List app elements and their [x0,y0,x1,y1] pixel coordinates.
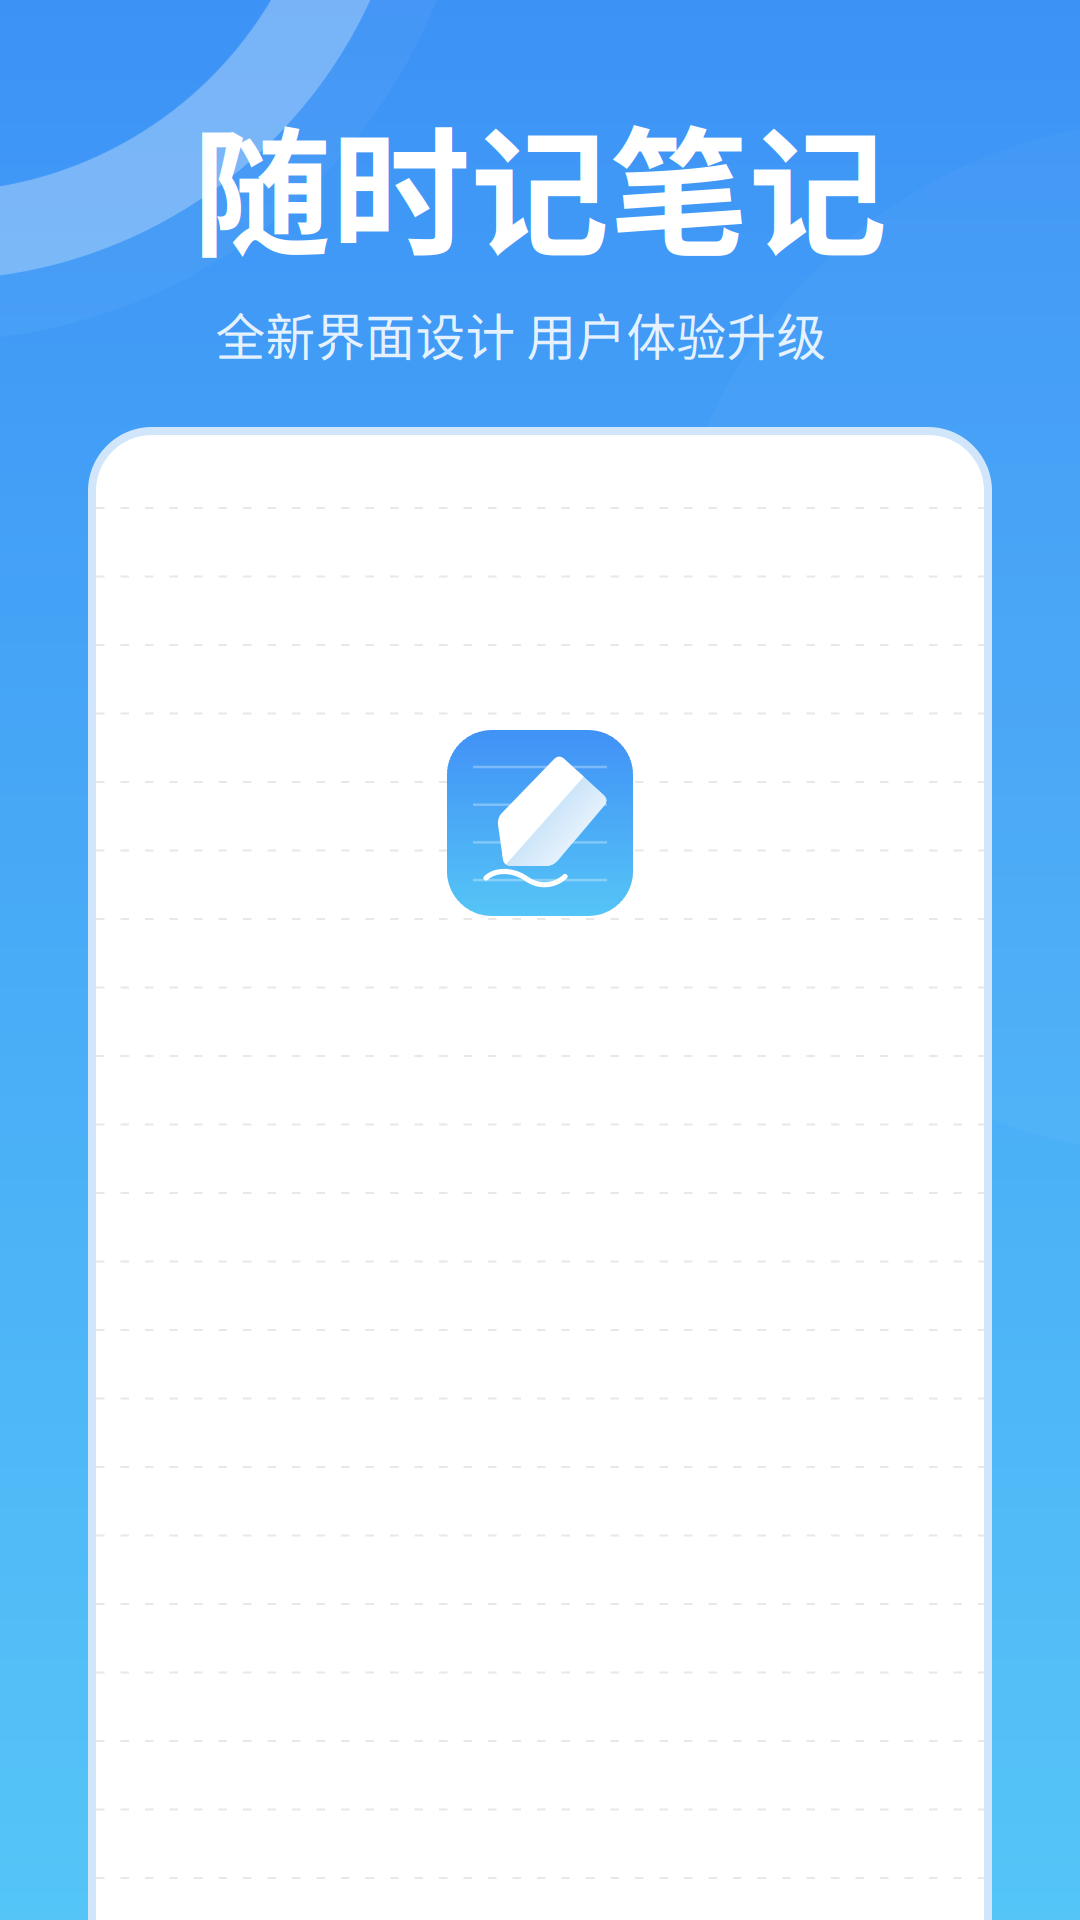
staticText: 随时记笔记 [192,84,887,284]
staticText: 全新界面设计 用户体验升级 [215,298,826,370]
